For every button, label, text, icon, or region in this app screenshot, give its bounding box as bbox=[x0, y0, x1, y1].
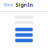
staticText: Sign In bbox=[15, 1, 32, 8]
staticText: Back bbox=[4, 2, 13, 7]
